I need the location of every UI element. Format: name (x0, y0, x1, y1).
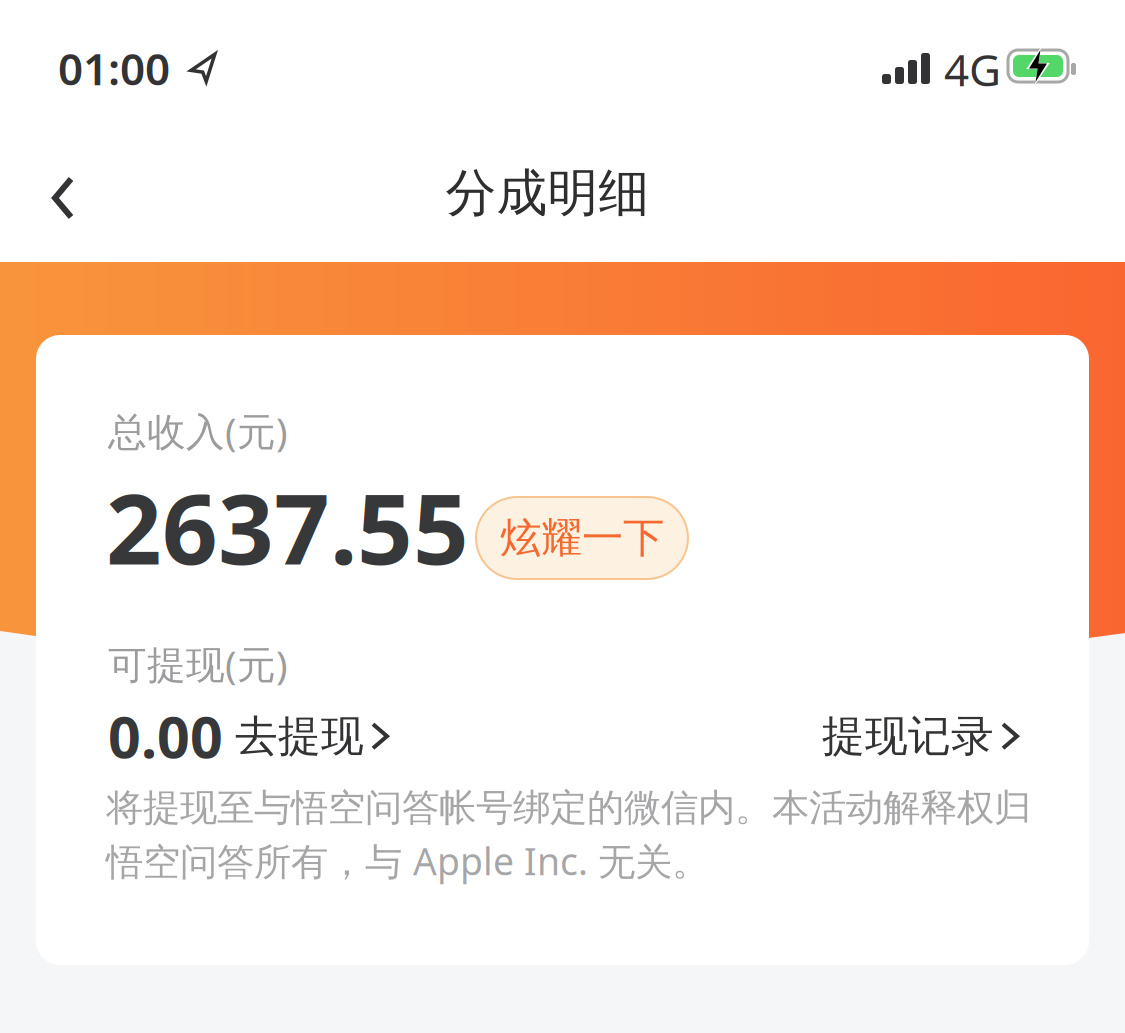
staticText: 01:00 (58, 39, 170, 97)
staticText: 总收入(元) (108, 405, 288, 456)
staticText: 分成明细 (445, 162, 649, 224)
staticText: 悟空问答所有，与 Apple Inc. 无关。 (106, 836, 709, 886)
staticText: 将提现至与悟空问答帐号绑定的微信内。本活动解释权归 (106, 785, 1031, 831)
staticText: 4G (944, 40, 1001, 98)
button[interactable]: 炫耀一下 (476, 497, 688, 579)
button[interactable]: Back (35, 159, 91, 237)
staticText: 2637.55 (106, 462, 469, 591)
staticText: 炫耀一下 (500, 513, 664, 563)
button[interactable]: 去提现 (235, 710, 387, 762)
staticText: 去提现 (235, 710, 364, 762)
button[interactable]: 提现记录 (822, 710, 1017, 762)
staticText: 0.00 (108, 698, 223, 774)
staticText: 提现记录 (822, 710, 994, 762)
staticText: 可提现(元) (108, 638, 288, 689)
